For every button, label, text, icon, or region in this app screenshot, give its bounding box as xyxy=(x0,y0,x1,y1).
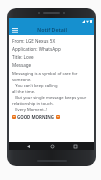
staticText: GOOD MORNING xyxy=(17,114,55,120)
button[interactable]: Recent apps xyxy=(71,142,79,150)
staticText: Every Moment..! xyxy=(12,107,48,113)
staticText: Message xyxy=(12,62,32,68)
staticText: someone. xyxy=(12,77,32,83)
staticText: relationship in touch. xyxy=(12,101,54,107)
staticText: all the time. xyxy=(12,89,36,95)
staticText: But your single message keeps your xyxy=(12,95,87,101)
staticText: From: LGE Nexus 5X xyxy=(12,38,56,44)
staticText: Title: Love xyxy=(12,54,34,60)
staticText: You can't keep calling xyxy=(12,83,58,89)
staticText: Application: WhatsApp xyxy=(12,46,61,52)
button[interactable]: Back xyxy=(24,142,32,150)
staticText: Messaging is a symbol of care for xyxy=(12,71,78,77)
staticText: Notif Detail xyxy=(37,26,67,33)
button[interactable]: Open navigation menu xyxy=(11,26,19,34)
button[interactable]: Home xyxy=(48,142,56,150)
